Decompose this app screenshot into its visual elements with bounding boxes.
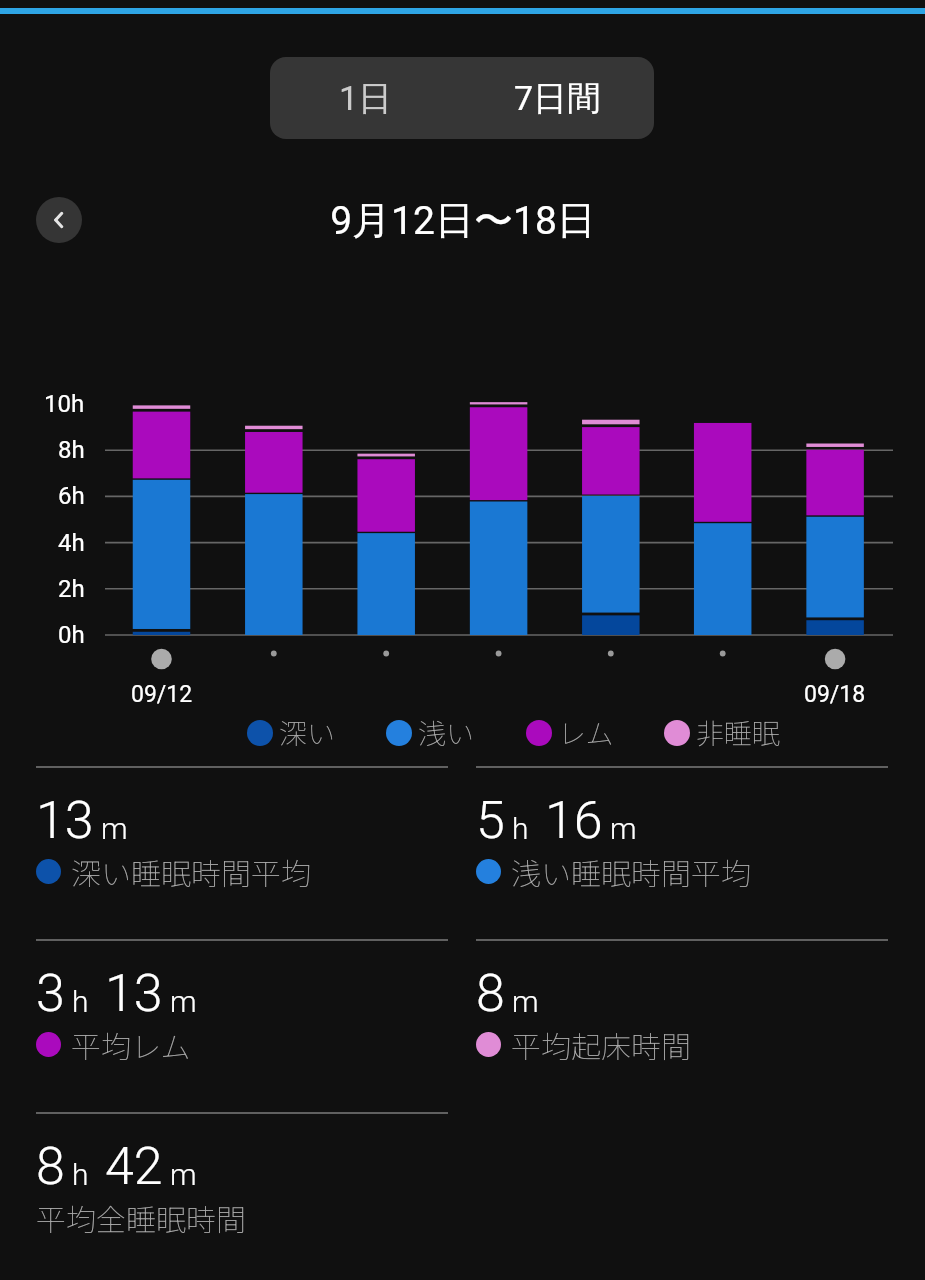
button[interactable]: 非睡眠 [664, 712, 781, 753]
button[interactable]: Previous week [36, 197, 82, 243]
staticText: m [512, 984, 539, 1019]
staticText: 6h [58, 482, 85, 510]
staticText: 7日間 [514, 77, 602, 120]
staticText: 非睡眠 [696, 712, 781, 753]
staticText: レム [558, 712, 614, 753]
staticText: 8 [476, 963, 505, 1024]
staticText: 1日 [339, 77, 393, 120]
staticText: 深い睡眠時間平均 [71, 850, 311, 893]
staticText: 10h [44, 390, 85, 418]
staticText: 5 [476, 790, 505, 851]
staticText: m [610, 811, 637, 846]
staticText: 8h [58, 436, 85, 464]
button[interactable]: 浅い [386, 712, 475, 753]
button[interactable]: 1日 [270, 57, 462, 139]
button[interactable]: 7日間 [462, 57, 654, 139]
staticText: m [170, 1157, 197, 1192]
staticText: 09/18 [804, 681, 866, 708]
staticText: h [72, 984, 89, 1019]
staticText: 0h [58, 621, 85, 649]
staticText: 平均全睡眠時間 [36, 1196, 246, 1239]
staticText: m [170, 984, 197, 1019]
button[interactable]: レム [526, 712, 614, 753]
staticText: h [72, 1157, 89, 1192]
staticText: 9月12日〜18日 [330, 196, 596, 245]
staticText: h [512, 811, 529, 846]
staticText: 浅い睡眠時間平均 [511, 850, 751, 893]
staticText: 13 [105, 963, 163, 1024]
staticText: 42 [105, 1136, 163, 1197]
staticText: 3 [36, 963, 65, 1024]
button[interactable]: 3 [36, 939, 448, 1089]
staticText: 平均レム [71, 1023, 191, 1066]
staticText: 16 [545, 790, 603, 851]
button[interactable]: 5 [476, 766, 888, 916]
staticText: 深い [279, 712, 336, 753]
staticText: 8 [36, 1136, 65, 1197]
button[interactable]: 13 [36, 766, 448, 916]
button[interactable]: 8 [36, 1112, 448, 1262]
staticText: 09/12 [131, 681, 193, 708]
staticText: 13 [36, 790, 94, 851]
staticText: m [101, 811, 128, 846]
staticText: 浅い [418, 712, 475, 753]
staticText: 4h [58, 529, 85, 557]
staticText: 平均起床時間 [511, 1023, 691, 1066]
staticText: 2h [58, 575, 85, 603]
button[interactable]: 深い [247, 712, 336, 753]
button[interactable]: 8 [476, 939, 888, 1089]
